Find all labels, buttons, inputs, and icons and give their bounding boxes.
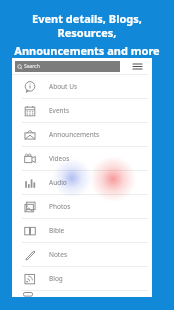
staticText: Photos	[49, 202, 71, 211]
button[interactable]: Audio	[12, 171, 152, 194]
staticText: Events	[49, 106, 70, 115]
button[interactable]	[12, 291, 152, 297]
staticText: Blog	[49, 274, 63, 283]
staticText: Event details, Blogs, Resources,	[6, 11, 168, 40]
button[interactable]: Search	[15, 61, 120, 72]
button[interactable]: Blog	[12, 267, 152, 290]
button[interactable]: Bible	[12, 219, 152, 242]
staticText: Announcements and more	[14, 43, 160, 58]
staticText: About Us	[49, 82, 78, 91]
button[interactable]: Events	[12, 99, 152, 122]
button[interactable]: Notes	[12, 243, 152, 266]
staticText: Announcements	[49, 130, 100, 139]
staticText: Notes	[49, 250, 67, 259]
staticText: Videos	[49, 154, 70, 163]
staticText: Search	[24, 63, 40, 70]
button[interactable]: Menu	[130, 59, 144, 73]
staticText: Audio	[49, 178, 67, 187]
button[interactable]: Videos	[12, 147, 152, 170]
button[interactable]: About Us	[12, 75, 152, 98]
button[interactable]: Photos	[12, 195, 152, 218]
button[interactable]: Announcements	[12, 123, 152, 146]
staticText: Bible	[49, 226, 65, 235]
